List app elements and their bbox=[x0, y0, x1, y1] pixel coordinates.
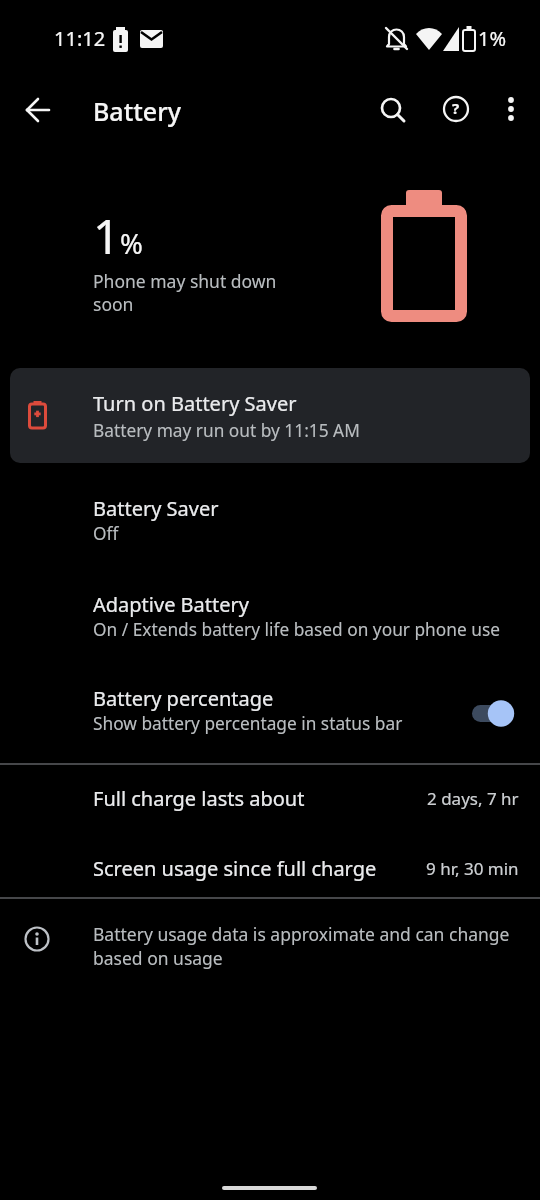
staticText: Screen usage since full charge bbox=[93, 855, 377, 882]
staticText: 9 hr, 30 min bbox=[426, 857, 519, 880]
button[interactable] bbox=[487, 85, 535, 133]
staticText: Battery Saver bbox=[93, 495, 219, 522]
button[interactable]: Adaptive Battery bbox=[0, 574, 540, 666]
staticText: ? bbox=[452, 98, 460, 118]
button[interactable]: Battery percentage bbox=[0, 668, 540, 762]
staticText: On / Extends battery life based on your … bbox=[93, 618, 500, 642]
button[interactable]: Full charge lasts about bbox=[0, 766, 540, 830]
button[interactable]: Turn on Battery Saver bbox=[10, 368, 530, 463]
staticText: Show battery percentage in status bar bbox=[93, 712, 403, 736]
staticText: Battery usage data is approximate and ca… bbox=[93, 922, 510, 970]
button[interactable]: Screen usage since full charge bbox=[0, 836, 540, 900]
staticText: Full charge lasts about bbox=[93, 785, 305, 812]
staticText: Off bbox=[93, 522, 119, 546]
staticText: Adaptive Battery bbox=[93, 591, 250, 618]
staticText: Battery may run out by 11:15 AM bbox=[93, 419, 360, 443]
staticText: Phone may shut down soon bbox=[93, 269, 277, 317]
staticText: Turn on Battery Saver bbox=[93, 390, 297, 417]
staticText: Battery percentage bbox=[93, 685, 274, 712]
button[interactable] bbox=[14, 85, 62, 133]
button[interactable] bbox=[368, 85, 416, 133]
staticText: 1% bbox=[478, 25, 507, 52]
button[interactable]: Battery Saver bbox=[0, 478, 540, 570]
staticText: Battery bbox=[93, 94, 181, 128]
staticText: 2 days, 7 hr bbox=[427, 787, 519, 810]
button[interactable]: ? bbox=[432, 85, 480, 133]
staticText: 11:12 bbox=[54, 25, 106, 52]
staticText: 1% bbox=[93, 204, 143, 268]
